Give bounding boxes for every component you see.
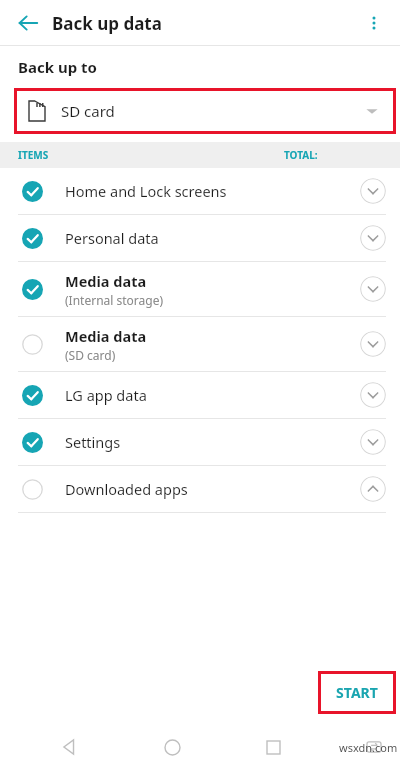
- button[interactable]: More options: [354, 3, 394, 43]
- button[interactable]: Home and Lock screens: [0, 168, 400, 214]
- button[interactable]: Expand: [360, 382, 386, 408]
- staticText: wsxdn.com: [339, 740, 398, 755]
- button[interactable]: Expand: [360, 225, 386, 251]
- staticText: Home and Lock screens: [65, 181, 227, 201]
- button[interactable]: Expand: [360, 429, 386, 455]
- button[interactable]: Back: [48, 725, 92, 769]
- button[interactable]: Settings: [0, 419, 400, 465]
- button[interactable]: Back: [8, 3, 48, 43]
- button[interactable]: START: [321, 674, 393, 711]
- button[interactable]: SD card: [17, 91, 393, 131]
- staticText: Back up to: [18, 57, 97, 77]
- button[interactable]: Personal data: [0, 215, 400, 261]
- staticText: Media data: [65, 271, 147, 291]
- button[interactable]: Expand: [360, 178, 386, 204]
- staticText: Downloaded apps: [65, 479, 188, 499]
- staticText: ITEMS: [18, 148, 49, 162]
- button[interactable]: Collapse: [360, 476, 386, 502]
- button[interactable]: Home: [150, 725, 194, 769]
- staticText: (Internal storage): [65, 292, 164, 308]
- button[interactable]: Capture: [352, 725, 396, 769]
- button[interactable]: Expand: [360, 331, 386, 357]
- button[interactable]: Media data: [0, 317, 400, 371]
- button[interactable]: Downloaded apps: [0, 466, 400, 512]
- staticText: TOTAL:: [284, 148, 318, 162]
- staticText: Media data: [65, 326, 147, 346]
- button[interactable]: Media data: [0, 262, 400, 316]
- button[interactable]: Expand: [360, 276, 386, 302]
- button[interactable]: Recent apps: [251, 725, 295, 769]
- staticText: LG app data: [65, 385, 147, 405]
- staticText: Personal data: [65, 228, 159, 248]
- staticText: Settings: [65, 432, 121, 452]
- staticText: (SD card): [65, 347, 116, 363]
- button[interactable]: LG app data: [0, 372, 400, 418]
- staticText: SD card: [61, 101, 115, 121]
- staticText: START: [336, 683, 378, 702]
- staticText: Back up data: [52, 12, 162, 35]
